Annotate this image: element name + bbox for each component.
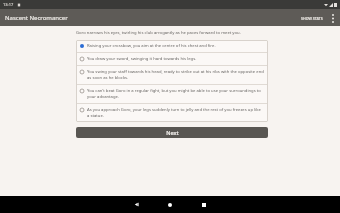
button[interactable]: SHOW STATS (298, 13, 326, 24)
staticText: Raising your crossbow, you aim at the ce… (87, 43, 216, 49)
staticText: You swing your staff towards his head, r… (87, 69, 264, 81)
button[interactable]: You draw your sword, swinging it hard to… (76, 53, 268, 65)
button[interactable]: More options (326, 11, 340, 25)
button[interactable]: Back (126, 196, 146, 213)
button[interactable]: Home (160, 196, 180, 213)
staticText: Goro narrows his eyes, twirling his club… (76, 30, 241, 36)
staticText: SHOW STATS (301, 16, 323, 21)
staticText: Next (166, 129, 179, 136)
staticText: You draw your sword, swinging it hard to… (87, 56, 197, 62)
button[interactable]: Raising your crossbow, you aim at the ce… (76, 40, 268, 52)
button[interactable]: You swing your staff towards his head, r… (76, 66, 268, 84)
button[interactable]: Recent apps (194, 196, 214, 213)
staticText: Nascent Necromancer (5, 14, 68, 22)
staticText: As you approach Goro, your legs suddenly… (87, 107, 264, 119)
button[interactable]: You can't beat Goro in a regular fight, … (76, 85, 268, 103)
staticText: 13:17 (3, 2, 14, 7)
button[interactable]: Next (76, 127, 268, 138)
staticText: You can't beat Goro in a regular fight, … (87, 88, 264, 100)
button[interactable]: As you approach Goro, your legs suddenly… (76, 104, 268, 122)
